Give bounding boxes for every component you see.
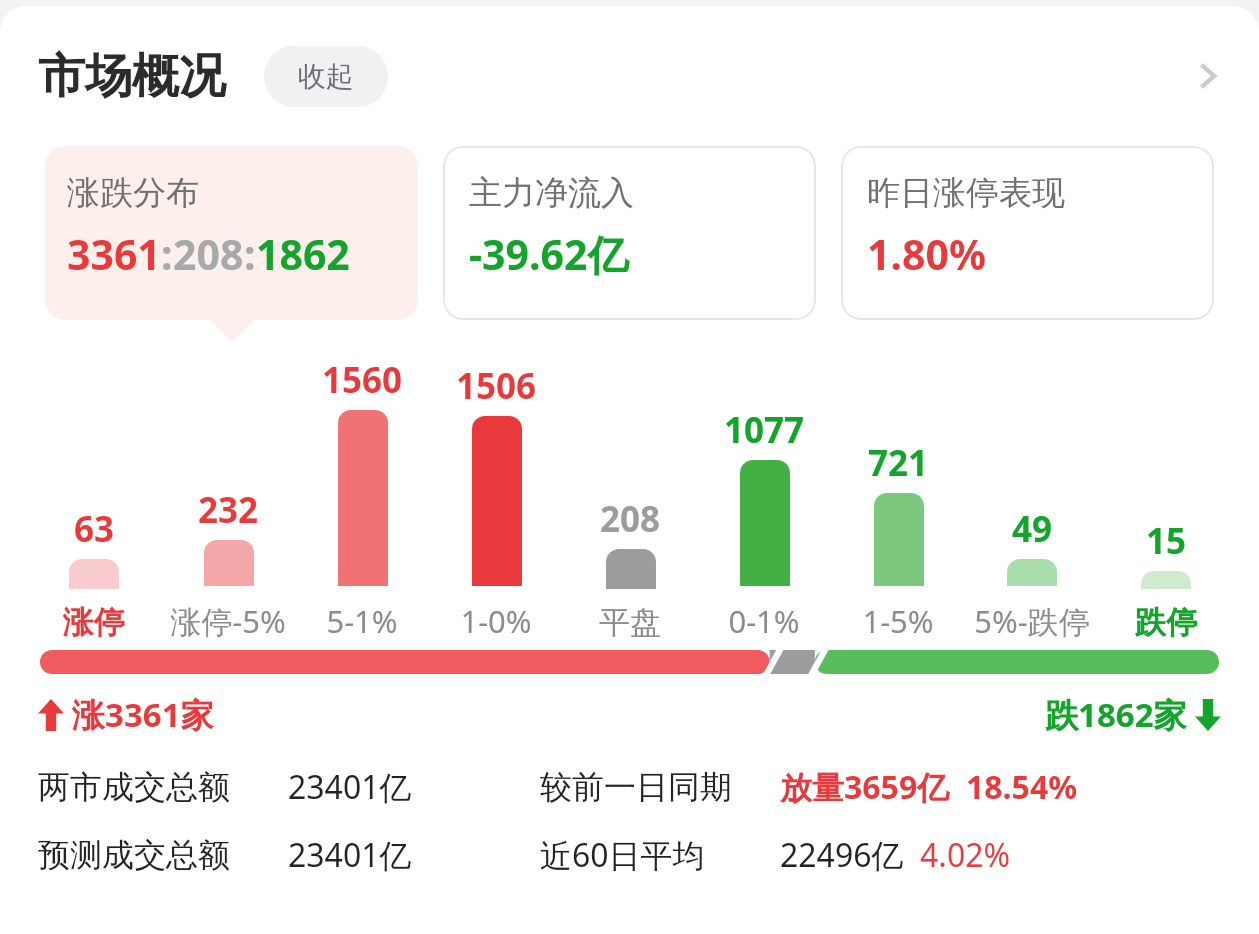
button[interactable]: More — [1177, 46, 1237, 106]
button[interactable]: 收起 — [264, 46, 388, 107]
button[interactable]: 涨跌分布 — [45, 146, 418, 320]
staticText: 22496亿 — [780, 833, 904, 877]
staticText: 1.80% — [867, 226, 986, 282]
staticText: 1-0% — [429, 600, 563, 642]
staticText: 232 — [198, 486, 259, 534]
staticText: 两市成交总额 — [38, 767, 230, 807]
staticText: 昨日涨停表现 — [867, 172, 1065, 214]
staticText: 涨跌分布 — [67, 172, 199, 214]
staticText: 放量3659亿 — [780, 765, 950, 809]
staticText: 平盘 — [563, 603, 697, 642]
staticText: 5-1% — [295, 600, 429, 642]
staticText: 近60日平均 — [540, 833, 705, 877]
staticText: 收起 — [298, 59, 354, 94]
staticText: 预测成交总额 — [38, 835, 230, 875]
staticText: 1077 — [724, 406, 805, 454]
staticText: 1-5% — [831, 600, 965, 642]
staticText: 涨3361家 — [72, 692, 214, 737]
staticText: 49 — [1012, 505, 1053, 553]
staticText: 208 — [600, 495, 661, 543]
staticText: : — [244, 226, 256, 282]
staticText: 3361 — [67, 226, 161, 282]
staticText: 18.54% — [966, 765, 1078, 809]
staticText: 208 — [173, 226, 244, 282]
staticText: 涨停-5% — [161, 600, 295, 642]
staticText: 市场概况 — [38, 47, 226, 106]
staticText: 1506 — [456, 362, 537, 410]
staticText: 721 — [868, 439, 929, 487]
staticText: 跌1862家 — [1045, 692, 1187, 737]
staticText: 4.02% — [920, 833, 1011, 877]
staticText: 23401亿 — [288, 833, 412, 877]
staticText: : — [161, 226, 173, 282]
staticText: 23401亿 — [288, 765, 412, 809]
staticText: 0-1% — [697, 600, 831, 642]
staticText: 63 — [74, 505, 115, 553]
staticText: 1862 — [256, 226, 350, 282]
staticText: 5%-跌停 — [965, 600, 1099, 642]
staticText: 涨停 — [26, 603, 161, 642]
staticText: 较前一日同期 — [540, 767, 732, 807]
staticText: 跌停 — [1099, 603, 1233, 642]
staticText: 1560 — [322, 356, 403, 404]
button[interactable]: 主力净流入 — [443, 146, 816, 320]
staticText: 15 — [1146, 517, 1187, 565]
button[interactable]: 昨日涨停表现 — [841, 146, 1214, 320]
staticText: 主力净流入 — [469, 172, 634, 214]
staticText: -39.62亿 — [469, 226, 629, 282]
